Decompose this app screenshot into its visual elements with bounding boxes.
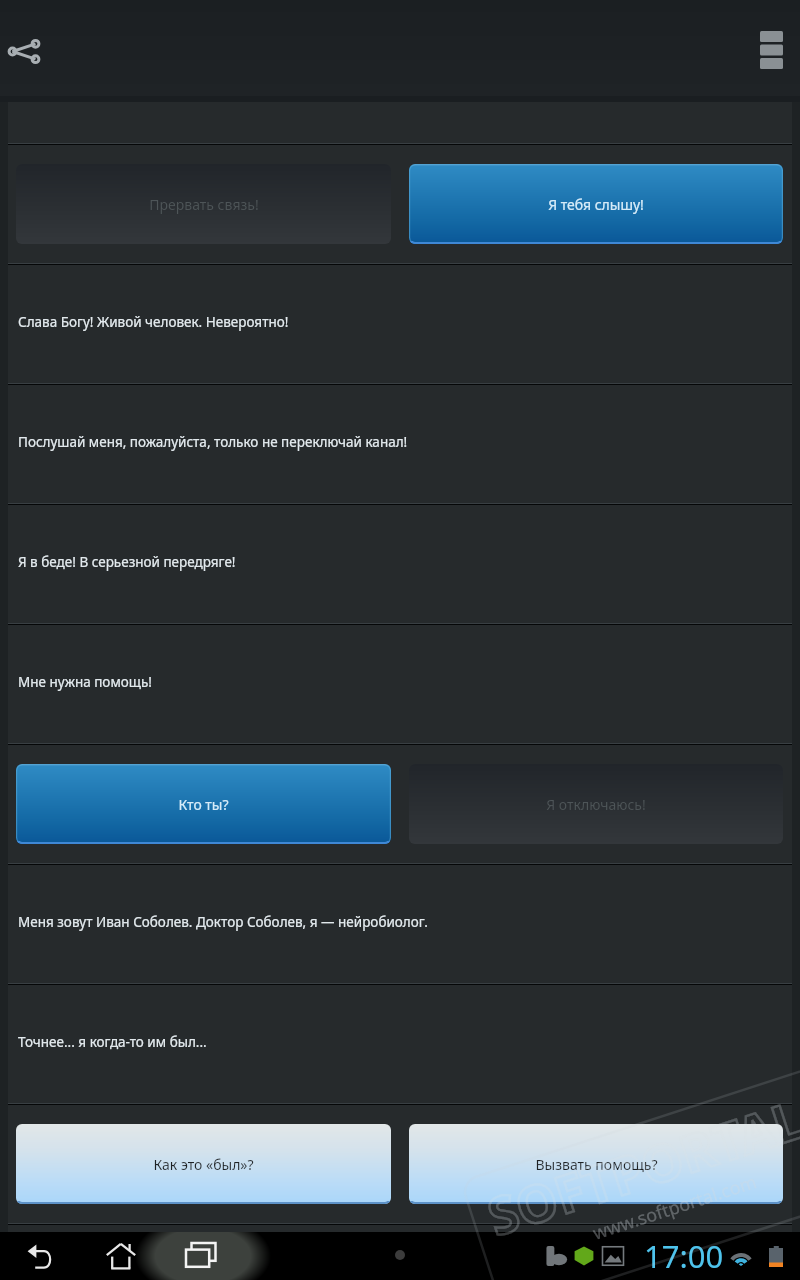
button[interactable]: Я отключаюсь!: [409, 764, 783, 844]
button[interactable]: Прервать связь!: [16, 164, 391, 244]
button[interactable]: Кто ты?: [16, 764, 391, 844]
staticText: Прервать связь!: [149, 195, 259, 214]
button[interactable]: Back: [8, 1232, 72, 1280]
staticText: Как это «был»?: [153, 1155, 254, 1174]
button[interactable]: Я в беде! В серьезной передряге!: [8, 505, 792, 623]
button[interactable]: Recent apps: [169, 1232, 233, 1280]
button[interactable]: Точнее... я когда-то им был...: [8, 985, 792, 1103]
button[interactable]: Как это «был»?: [16, 1124, 391, 1204]
staticText: Мне нужна помощь!: [18, 673, 152, 691]
button[interactable]: Слава Богу! Живой человек. Невероятно!: [8, 265, 792, 383]
button[interactable]: Меня зовут Иван Соболев. Доктор Соболев,…: [8, 865, 792, 983]
button[interactable]: Послушай меня, пожалуйста, только не пер…: [8, 385, 792, 503]
button[interactable]: Мне нужна помощь!: [8, 625, 792, 743]
staticText: Вызвать помощь?: [535, 1155, 658, 1174]
staticText: Я в беде! В серьезной передряге!: [18, 553, 236, 571]
button[interactable]: More options: [748, 0, 800, 96]
button[interactable]: Я тебя слышу!: [409, 164, 783, 244]
button[interactable]: Home: [89, 1232, 153, 1280]
staticText: Кто ты?: [178, 795, 229, 814]
staticText: Я отключаюсь!: [546, 795, 646, 814]
staticText: Слава Богу! Живой человек. Невероятно!: [18, 313, 289, 331]
staticText: Точнее... я когда-то им был...: [18, 1033, 207, 1051]
staticText: 17:00: [644, 1235, 724, 1277]
staticText: Меня зовут Иван Соболев. Доктор Соболев,…: [18, 913, 428, 931]
staticText: Я тебя слышу!: [548, 195, 644, 214]
staticText: Послушай меня, пожалуйста, только не пер…: [18, 433, 408, 451]
button[interactable]: Вызвать помощь?: [409, 1124, 783, 1204]
button[interactable]: Share: [0, 0, 48, 96]
